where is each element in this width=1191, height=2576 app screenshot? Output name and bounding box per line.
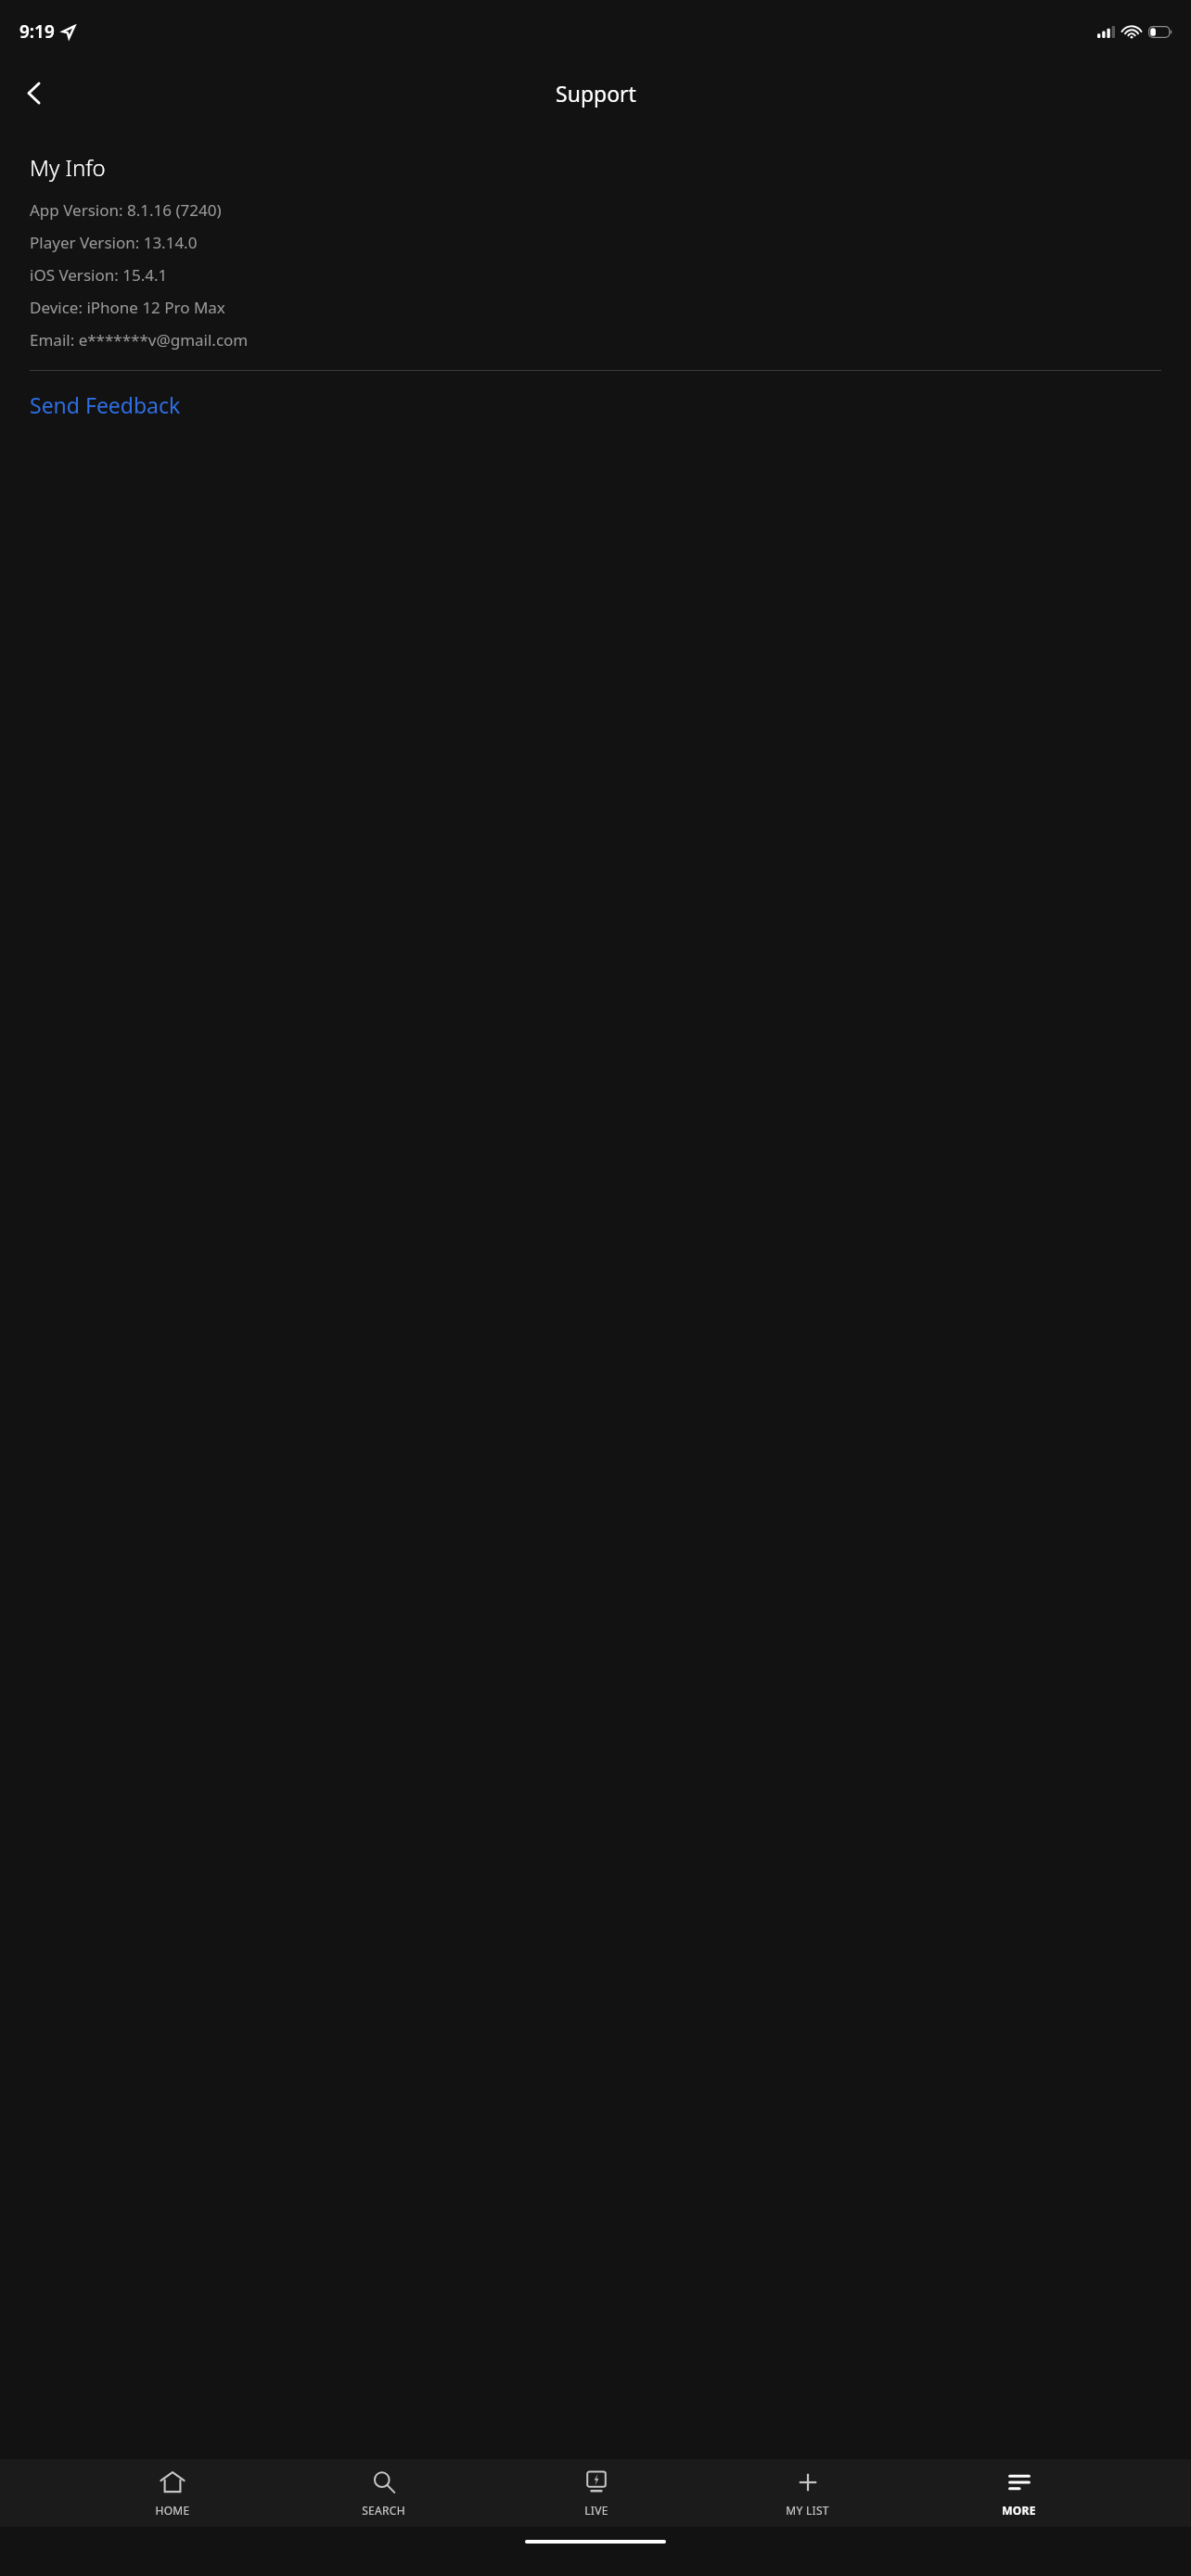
button[interactable]: LIVE	[557, 2459, 635, 2527]
staticText: iOS Version: 15.4.1	[30, 264, 168, 286]
button[interactable]: Send Feedback	[30, 390, 181, 419]
button[interactable]: MY LIST	[768, 2459, 847, 2527]
staticText: 9:19	[19, 19, 55, 44]
staticText: HOME	[155, 2503, 190, 2518]
staticText: Device: iPhone 12 Pro Max	[30, 297, 225, 318]
button[interactable]: MORE	[980, 2459, 1058, 2527]
staticText: MY LIST	[786, 2503, 829, 2518]
staticText: LIVE	[584, 2503, 608, 2518]
staticText: App Version: 8.1.16 (7240)	[30, 199, 222, 221]
button[interactable]: Back	[7, 67, 59, 119]
staticText: MORE	[1002, 2503, 1036, 2518]
staticText: SEARCH	[362, 2503, 405, 2518]
staticText: My Info	[30, 152, 106, 183]
staticText: Send Feedback	[30, 390, 181, 419]
button[interactable]: HOME	[133, 2459, 211, 2527]
staticText: Support	[556, 79, 636, 108]
button[interactable]: SEARCH	[344, 2459, 423, 2527]
staticText: Player Version: 13.14.0	[30, 232, 198, 253]
staticText: Email: e*******v@gmail.com	[30, 329, 249, 351]
